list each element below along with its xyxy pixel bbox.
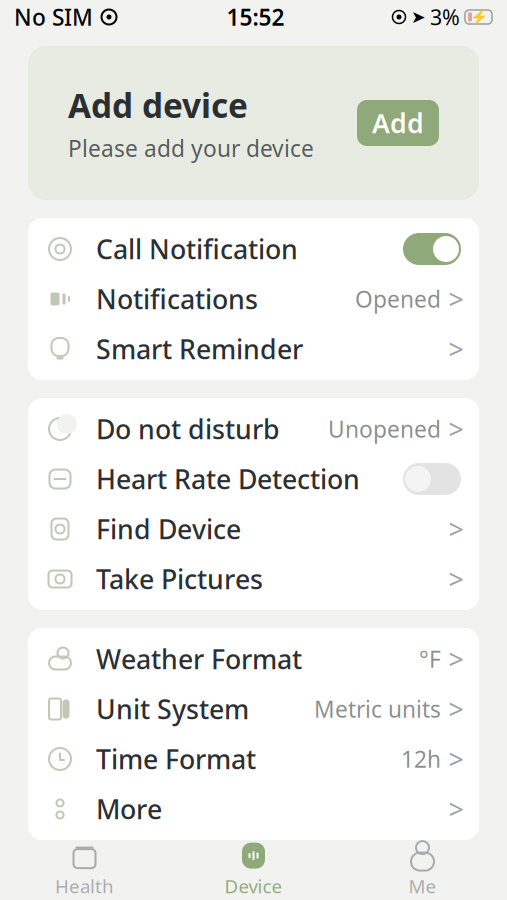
staticText: Smart Reminder	[96, 331, 303, 367]
button[interactable]: Call Notification	[28, 224, 479, 274]
staticText: >	[448, 791, 463, 827]
button[interactable]: Smart Reminder	[28, 324, 479, 374]
button[interactable]: Notifications	[28, 274, 479, 324]
staticText: Add device	[68, 83, 248, 127]
staticText: Please add your device	[68, 133, 314, 163]
staticText: No SIM	[14, 2, 93, 32]
staticText: Weather Format	[96, 641, 302, 677]
staticText: Take Pictures	[96, 561, 263, 597]
staticText: >	[448, 411, 463, 447]
staticText: >	[448, 331, 463, 367]
button[interactable]: Take Pictures	[28, 554, 479, 604]
button[interactable]: Add	[357, 100, 439, 146]
staticText: 3%	[430, 3, 460, 31]
staticText: Health	[55, 874, 114, 898]
button[interactable]: Device	[169, 841, 338, 899]
button[interactable]: Unit System	[28, 684, 479, 734]
staticText: Me	[408, 874, 436, 898]
staticText: More	[96, 791, 162, 827]
staticText: Device	[224, 874, 282, 898]
button[interactable]: Me	[338, 841, 507, 899]
staticText: >	[448, 561, 463, 597]
staticText: >	[448, 691, 463, 727]
staticText: ⚡	[469, 9, 487, 25]
button[interactable]: Health	[0, 841, 169, 899]
button[interactable]: Heart Rate Detection	[28, 454, 479, 504]
button[interactable]: Weather Format	[28, 634, 479, 684]
button[interactable]: Do not disturb	[28, 404, 479, 454]
staticText: 12h	[401, 744, 441, 774]
staticText: >	[448, 641, 463, 677]
staticText: Add	[372, 105, 424, 141]
staticText: ➤	[411, 7, 426, 27]
staticText: >	[448, 741, 463, 777]
staticText: Call Notification	[96, 231, 298, 267]
staticText: Heart Rate Detection	[96, 461, 360, 497]
staticText: Metric units	[314, 694, 441, 724]
staticText: Unopened	[328, 414, 441, 444]
staticText: >	[448, 281, 463, 317]
staticText: >	[448, 511, 463, 547]
button[interactable]: Find Device	[28, 504, 479, 554]
staticText: Unit System	[96, 691, 249, 727]
staticText: Time Format	[96, 741, 256, 777]
staticText: Do not disturb	[96, 411, 280, 447]
button[interactable]: More	[28, 784, 479, 834]
button[interactable]: Time Format	[28, 734, 479, 784]
staticText: 15:52	[226, 2, 284, 32]
staticText: Opened	[355, 284, 441, 314]
staticText: Notifications	[96, 281, 258, 317]
staticText: Find Device	[96, 511, 241, 547]
staticText: °F	[419, 644, 441, 674]
